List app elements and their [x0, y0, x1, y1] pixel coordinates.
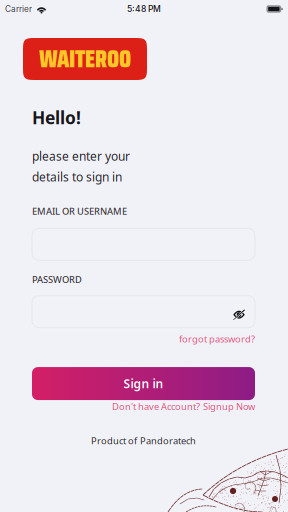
staticText: forgot password?: [179, 333, 255, 345]
staticText: 5:48 PM: [127, 4, 161, 14]
staticText: Pandoratech: [140, 434, 196, 447]
button[interactable]: Sign in: [32, 367, 255, 400]
staticText: Product of: [91, 434, 137, 447]
button[interactable]: Don't have Account?: [32, 400, 255, 412]
staticText: WAITEROO: [39, 40, 131, 78]
staticText: PASSWORD: [32, 273, 82, 286]
staticText: EMAIL OR USERNAME: [32, 205, 127, 217]
staticText: Signup Now: [203, 400, 255, 412]
staticText: Hello!: [32, 106, 81, 129]
button[interactable]: Product of: [32, 434, 255, 447]
staticText: please enter your: [32, 148, 130, 164]
button[interactable]: forgot password?: [179, 328, 255, 347]
button[interactable]: Show password: [223, 293, 255, 331]
staticText: Don't have Account?: [112, 400, 200, 412]
staticText: details to sign in: [32, 169, 122, 185]
staticText: Carrier: [5, 4, 32, 14]
staticText: Sign in: [123, 376, 163, 391]
